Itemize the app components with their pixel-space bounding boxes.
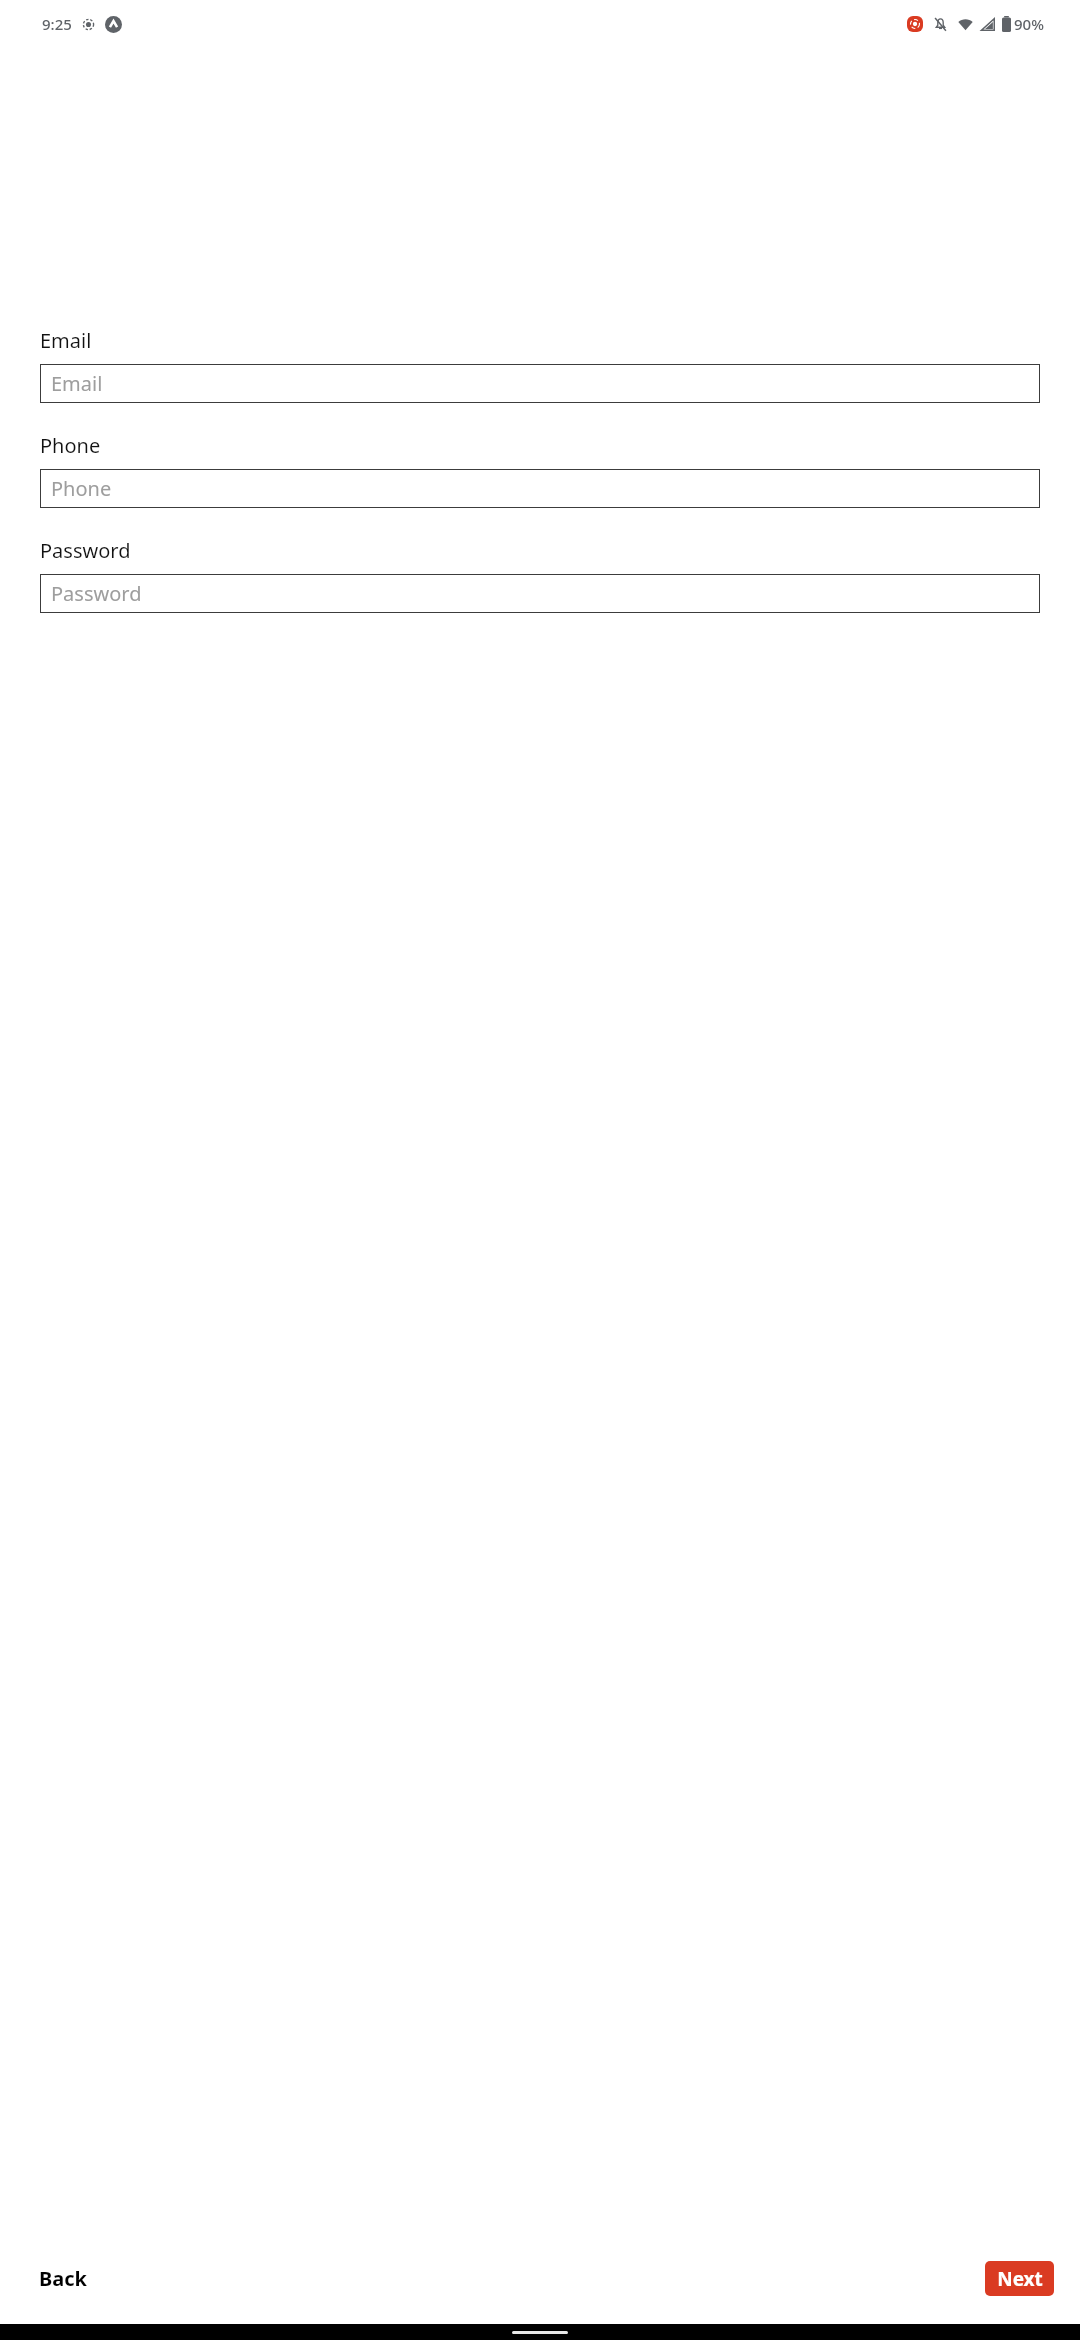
- staticText: 9:25: [42, 14, 72, 34]
- button[interactable]: Password: [40, 574, 1040, 613]
- staticText: Email: [40, 327, 92, 354]
- button[interactable]: Phone: [40, 469, 1040, 508]
- staticText: Next: [997, 2266, 1043, 2292]
- staticText: Back: [39, 2265, 87, 2292]
- staticText: Email: [51, 370, 103, 397]
- button[interactable]: Back: [37, 2255, 89, 2302]
- button[interactable]: Next: [985, 2261, 1054, 2296]
- staticText: Phone: [40, 432, 101, 459]
- button[interactable]: Email: [40, 364, 1040, 403]
- staticText: Password: [51, 580, 142, 607]
- staticText: Phone: [51, 475, 112, 502]
- staticText: 90%: [1014, 14, 1044, 34]
- staticText: Password: [40, 537, 131, 564]
